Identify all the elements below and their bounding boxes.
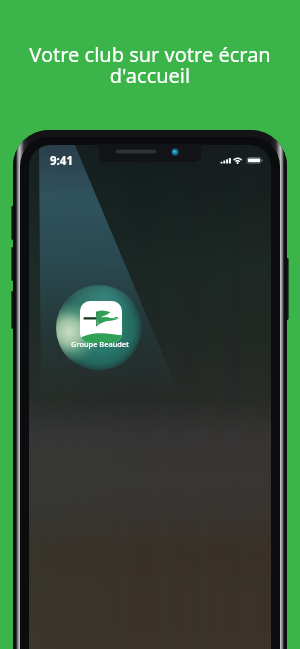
staticText: 9:41 <box>50 153 73 169</box>
button[interactable]: Groupe Beaudet app <box>80 301 122 343</box>
staticText: Groupe Beaudet <box>59 339 141 349</box>
staticText: Votre club sur votre écran d'accueil <box>12 41 288 89</box>
